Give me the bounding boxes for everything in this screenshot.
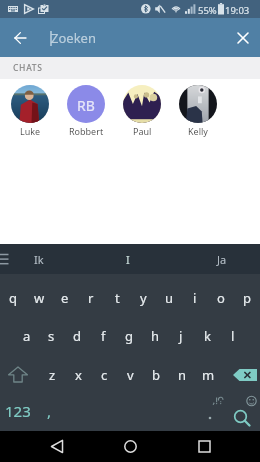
button[interactable]: Ja	[173, 244, 260, 274]
button[interactable]: Paul	[114, 79, 170, 137]
staticText: e	[61, 289, 69, 307]
staticText: Zoeken	[51, 29, 96, 47]
button[interactable]: x	[65, 352, 91, 392]
button[interactable]: c	[91, 352, 117, 392]
staticText: h	[151, 327, 160, 345]
staticText: k	[204, 327, 211, 345]
staticText: I	[126, 252, 130, 267]
button[interactable]: n	[169, 352, 195, 392]
staticText: c	[101, 366, 108, 384]
button[interactable]: m	[195, 352, 221, 392]
staticText: o	[217, 289, 225, 307]
button[interactable]: 123	[0, 392, 35, 431]
staticText: CHATS	[13, 62, 43, 74]
staticText: r	[88, 289, 94, 307]
staticText: l	[231, 327, 235, 345]
staticText: d	[73, 327, 81, 345]
staticText: Kelly	[188, 125, 208, 137]
staticText: q	[9, 289, 17, 307]
button[interactable]: y	[130, 274, 156, 313]
staticText: 55%	[198, 4, 217, 17]
button[interactable]: Keyboard menu	[0, 244, 16, 274]
button[interactable]: Backspace	[221, 352, 260, 392]
button[interactable]: z	[39, 352, 65, 392]
button[interactable]: Back	[0, 18, 40, 57]
staticText: y	[140, 289, 147, 307]
staticText: x	[75, 366, 82, 384]
staticText: b	[152, 366, 160, 384]
button[interactable]: Ik	[0, 244, 86, 274]
staticText: f	[101, 327, 106, 345]
staticText: m	[202, 366, 215, 384]
staticText: a	[23, 327, 31, 345]
staticText: w	[34, 289, 45, 307]
button[interactable]: r	[78, 274, 104, 313]
button[interactable]: l	[220, 313, 246, 352]
button[interactable]: Shift	[0, 352, 35, 392]
staticText: 19:03	[225, 4, 250, 17]
button[interactable]: t	[104, 274, 130, 313]
staticText: Robbert	[69, 125, 104, 137]
staticText: t	[115, 289, 120, 307]
staticText: n	[178, 366, 187, 384]
staticText: u	[165, 289, 174, 307]
button[interactable]: p	[234, 274, 260, 313]
button[interactable]: i	[182, 274, 208, 313]
button[interactable]: f	[90, 313, 116, 352]
staticText: s	[48, 327, 55, 345]
staticText: v	[127, 366, 134, 384]
button[interactable]: u	[156, 274, 182, 313]
staticText: 123	[5, 401, 31, 421]
button[interactable]: k	[194, 313, 220, 352]
button[interactable]: Recents	[187, 431, 221, 462]
button[interactable]: Clear	[226, 18, 260, 57]
button[interactable]: ,	[36, 392, 62, 431]
button[interactable]: h	[142, 313, 168, 352]
button[interactable]: q	[0, 274, 26, 313]
button[interactable]: s	[39, 313, 64, 352]
button[interactable]: a	[14, 313, 39, 352]
staticText: Ja	[217, 252, 227, 267]
button[interactable]: Search	[196, 392, 260, 431]
button[interactable]: Back	[40, 431, 74, 462]
button[interactable]: d	[64, 313, 90, 352]
staticText: g	[125, 327, 133, 345]
button[interactable]: Home	[113, 431, 147, 462]
staticText: ,	[47, 401, 52, 421]
button[interactable]: v	[117, 352, 143, 392]
staticText: z	[49, 366, 56, 384]
button[interactable]: w	[26, 274, 52, 313]
button[interactable]: I	[86, 244, 173, 274]
button[interactable]: e	[52, 274, 78, 313]
button[interactable]: Kelly	[170, 79, 226, 137]
button[interactable]: g	[116, 313, 142, 352]
staticText: p	[243, 289, 251, 307]
button[interactable]: o	[208, 274, 234, 313]
button[interactable]: RB	[58, 79, 114, 137]
staticText: i	[193, 289, 197, 307]
staticText: Paul	[133, 125, 152, 137]
staticText: Ik	[34, 252, 44, 267]
button[interactable]: Luke	[2, 79, 58, 137]
button[interactable]: j	[168, 313, 194, 352]
button[interactable]: b	[143, 352, 169, 392]
staticText: j	[179, 327, 183, 345]
staticText: Luke	[20, 125, 41, 137]
staticText: RB	[77, 96, 95, 115]
